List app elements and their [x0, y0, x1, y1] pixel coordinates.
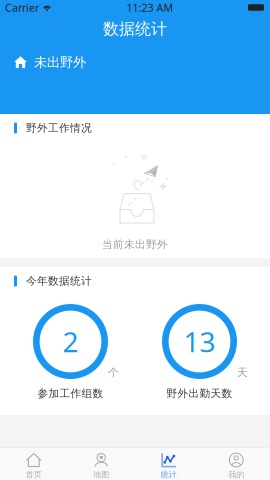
staticText: 今年数据统计	[26, 274, 92, 287]
staticText: 天	[237, 366, 248, 379]
staticText: 我的	[228, 470, 244, 479]
button[interactable]: 统计	[135, 448, 202, 480]
staticText: Carrier	[5, 0, 39, 15]
staticText: 13	[183, 323, 215, 360]
button[interactable]: 未出野外	[14, 49, 86, 75]
button[interactable]: 我的	[202, 448, 270, 480]
button[interactable]: 首页	[0, 448, 67, 480]
staticText: 个	[108, 366, 119, 379]
staticText: 参加工作组数	[37, 387, 103, 400]
staticText: 地图	[93, 470, 109, 479]
staticText: 统计	[161, 470, 177, 479]
staticText: 11:23 AM	[126, 0, 173, 15]
staticText: 未出野外	[34, 54, 86, 70]
staticText: 2	[62, 323, 78, 360]
staticText: 当前未出野外	[102, 238, 168, 251]
staticText: 野外出勤天数	[166, 387, 232, 400]
staticText: 首页	[26, 470, 42, 479]
button[interactable]: 地图	[67, 448, 135, 480]
staticText: 野外工作情况	[26, 121, 92, 134]
staticText: 数据统计	[103, 19, 167, 39]
